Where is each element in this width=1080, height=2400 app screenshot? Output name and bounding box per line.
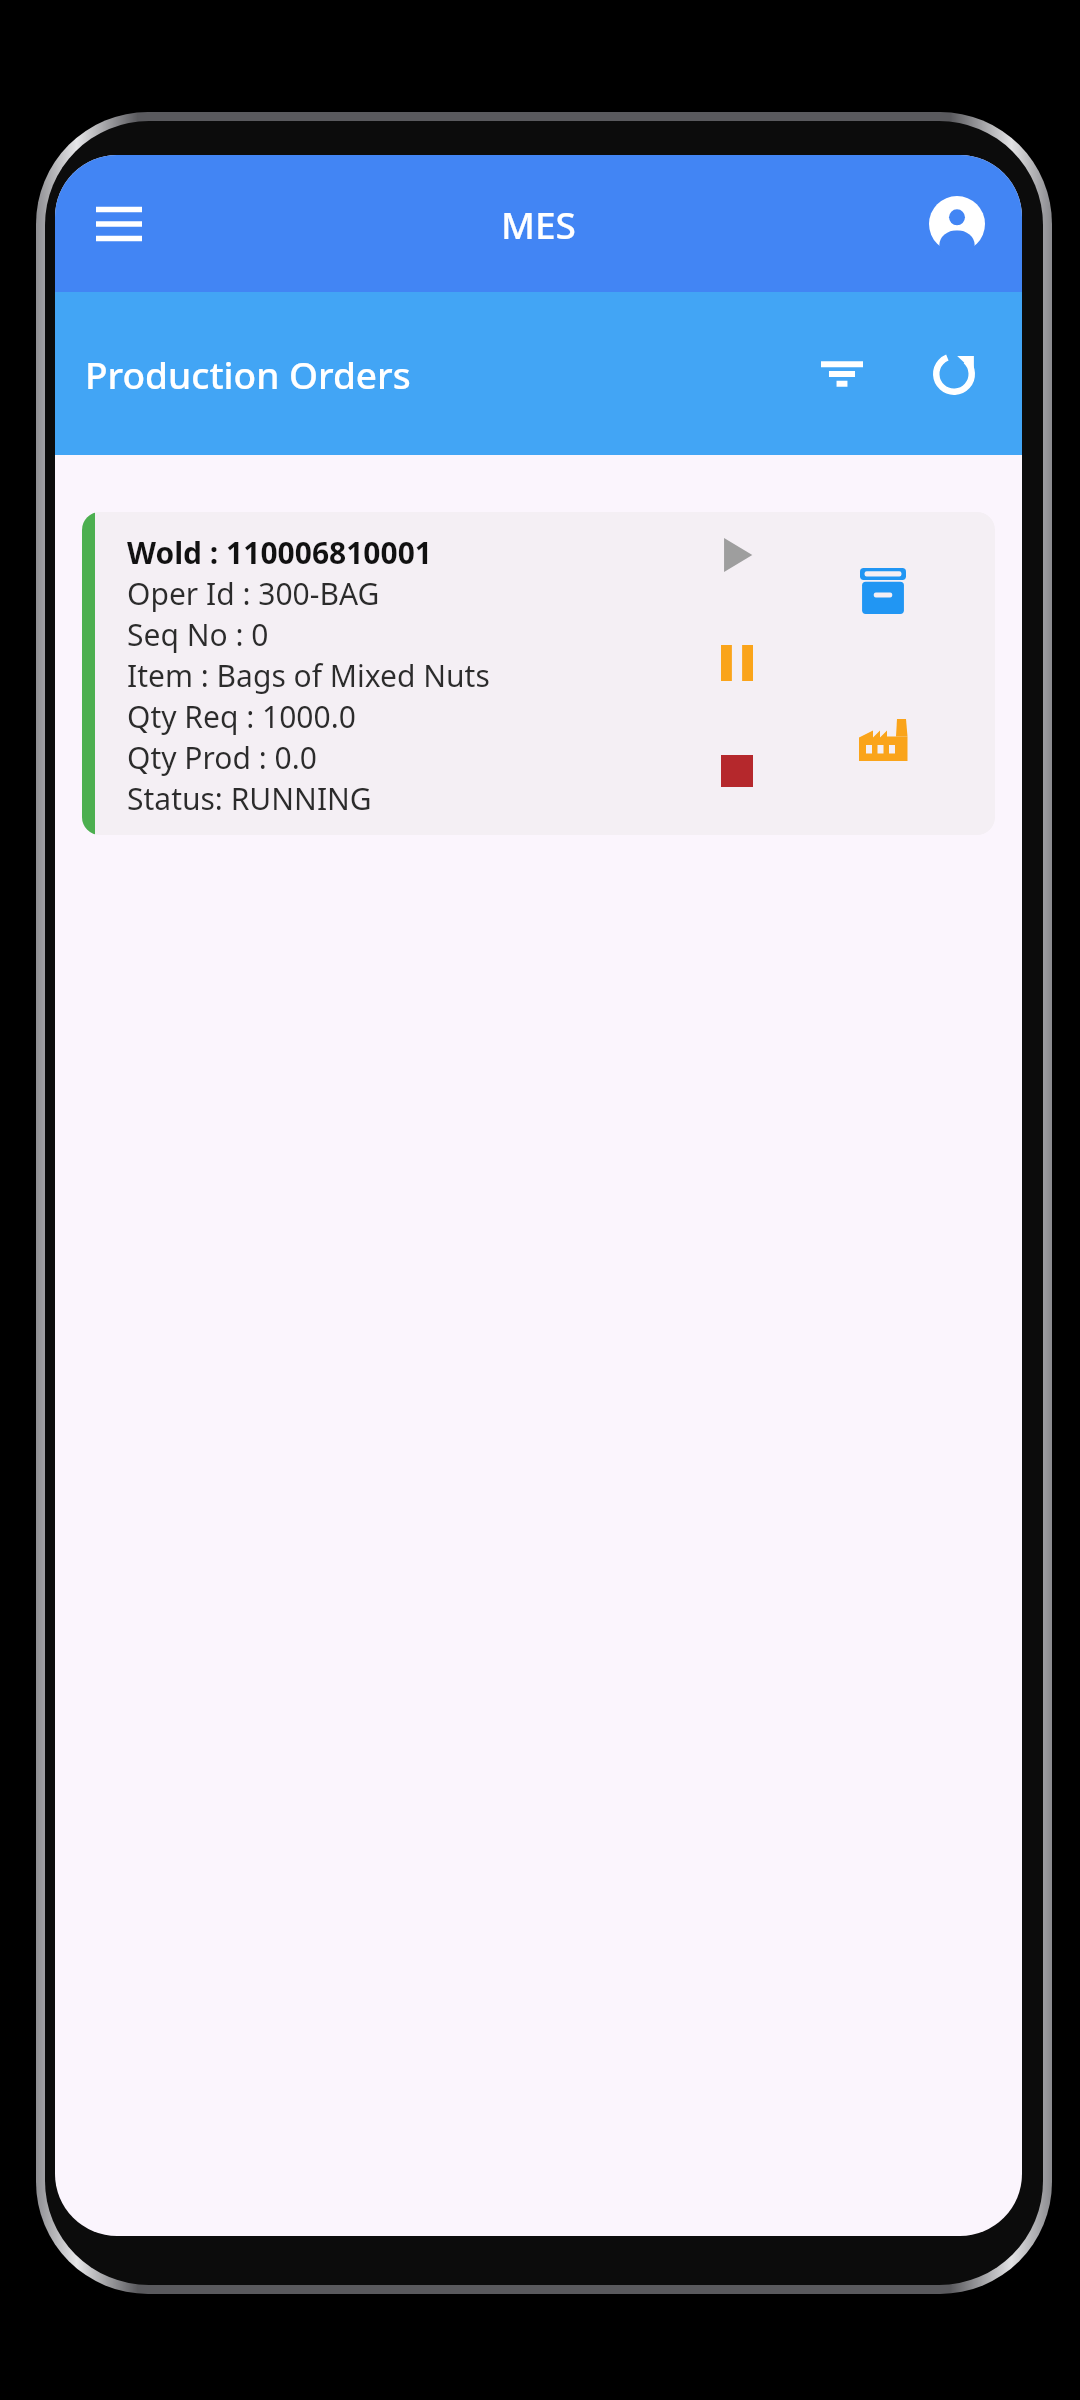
staticText: Item : Bags of Mixed Nuts (127, 655, 490, 696)
staticText: Seq No : 0 (127, 614, 269, 655)
button[interactable]: Account (919, 186, 995, 262)
staticText: Oper Id : 300-BAG (127, 573, 380, 614)
button[interactable]: Pause (708, 634, 766, 692)
staticText: Wold : 110006810001 (127, 532, 433, 573)
staticText: Status: RUNNING (127, 778, 372, 819)
staticText: MES (501, 199, 576, 249)
button[interactable]: Start (708, 526, 766, 584)
button[interactable]: Filter (800, 332, 884, 416)
button[interactable]: Open navigation menu (81, 186, 157, 262)
staticText: Qty Prod : 0.0 (127, 737, 317, 778)
button[interactable]: Archive (854, 562, 912, 620)
button[interactable]: Production (854, 710, 912, 768)
button[interactable]: Stop (708, 742, 766, 800)
button[interactable]: Wold : 110006810001 (82, 512, 995, 835)
staticText: Qty Req : 1000.0 (127, 696, 356, 737)
button[interactable]: Refresh (912, 332, 996, 416)
staticText: Production Orders (85, 349, 411, 399)
